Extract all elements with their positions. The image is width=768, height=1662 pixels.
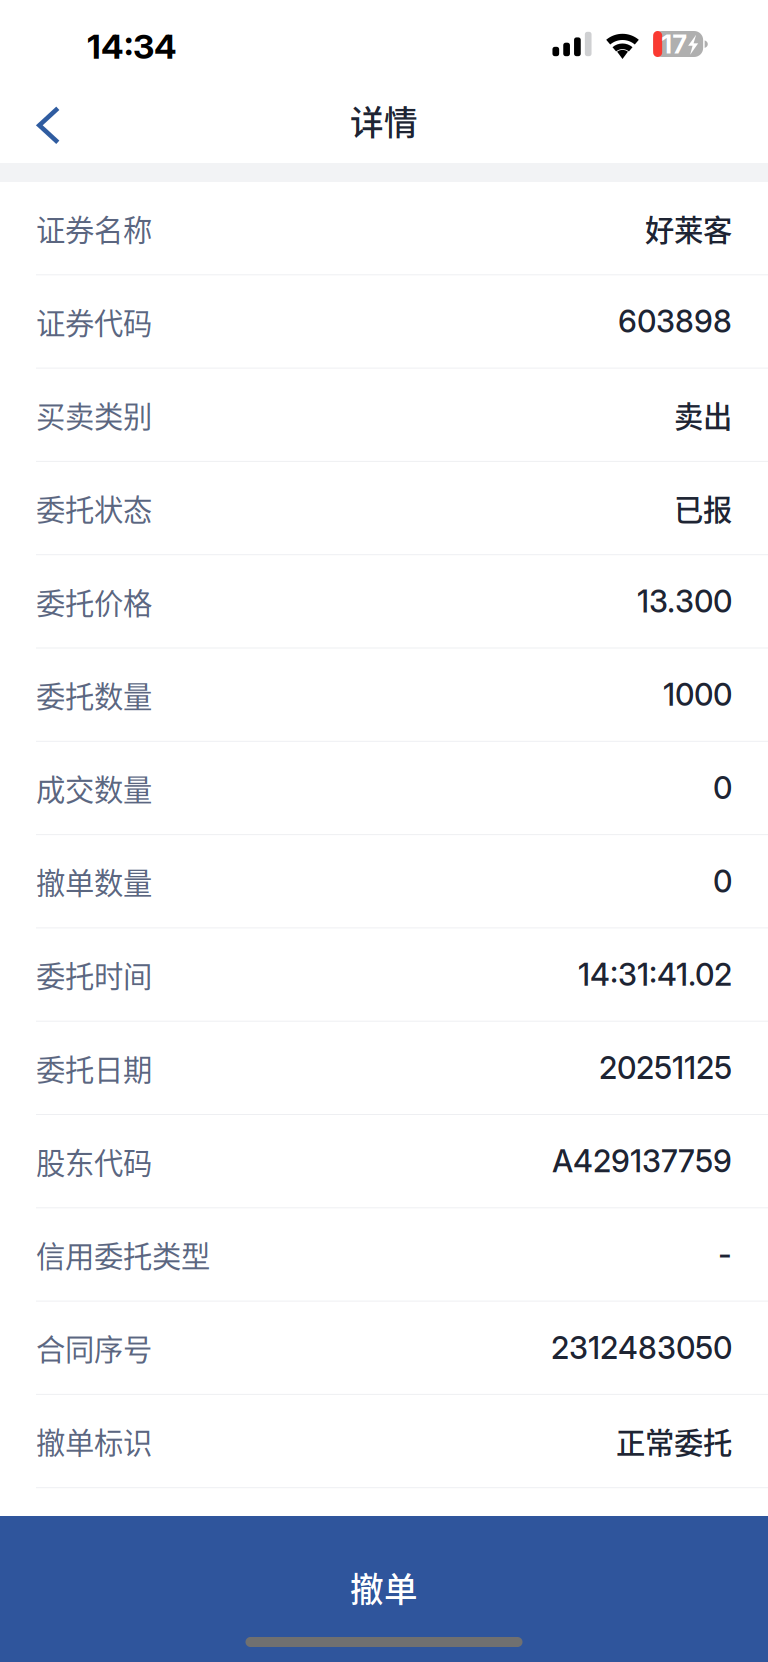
staticText: 14:34 [87,26,177,67]
staticText: 委托数量 [36,673,152,716]
staticText: 1000 [663,676,732,713]
button[interactable]: 撤单 [0,1516,768,1662]
staticText: - [718,1236,732,1273]
staticText: 证券代码 [36,300,152,343]
staticText: 2312483050 [551,1329,732,1366]
staticText: 13.300 [637,583,732,620]
staticText: 撤单标识 [36,1420,152,1462]
staticText: 买卖类别 [36,393,152,436]
button[interactable]: Back [0,88,84,163]
staticText: 委托日期 [36,1047,152,1089]
staticText: 详情 [350,96,418,145]
staticText: 0 [713,863,732,900]
staticText: 合同序号 [36,1326,152,1369]
staticText: 好莱客 [645,207,732,249]
staticText: 股东代码 [36,1140,152,1182]
staticText: 证券名称 [36,207,152,249]
staticText: A429137759 [552,1143,732,1180]
staticText: 成交数量 [36,767,152,809]
staticText: 已报 [674,487,732,529]
staticText: 0 [713,769,732,806]
staticText: 委托状态 [36,487,152,529]
staticText: 正常委托 [616,1420,732,1462]
staticText: 20251125 [599,1049,732,1086]
staticText: 17 [661,28,687,60]
staticText: 14:31:41.02 [578,956,732,993]
staticText: 委托价格 [36,580,152,623]
staticText: 信用委托类型 [36,1233,210,1276]
staticText: 撤单 [350,1563,418,1612]
staticText: 603898 [618,303,732,340]
staticText: 撤单数量 [36,860,152,902]
staticText: 卖出 [674,393,732,436]
staticText: 委托时间 [36,953,152,996]
